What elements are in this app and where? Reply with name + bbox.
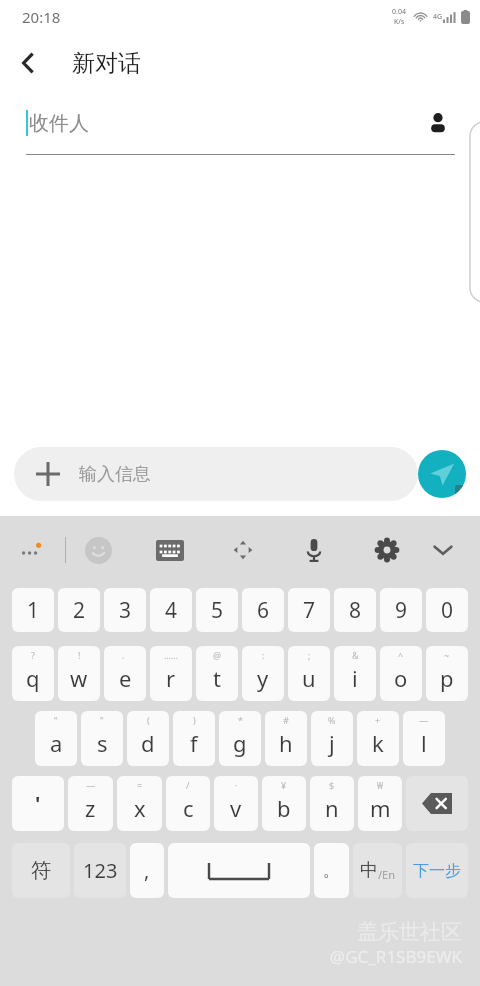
staticText: 1 <box>27 596 40 625</box>
button[interactable]: $ <box>310 776 354 831</box>
staticText: ₩ <box>377 779 384 791</box>
button[interactable]: & <box>334 646 376 701</box>
button[interactable]: Emoji <box>76 528 120 572</box>
button[interactable]: % <box>311 711 353 766</box>
button[interactable]: Backspace <box>406 776 468 831</box>
button[interactable]: / <box>166 776 210 831</box>
staticText: 123 <box>83 857 118 884</box>
staticText: c <box>183 793 194 823</box>
staticText: 4 <box>165 596 178 625</box>
button[interactable]: ; <box>288 646 330 701</box>
button[interactable]: ' <box>12 776 64 831</box>
staticText: ? <box>31 649 35 661</box>
button[interactable]: — <box>68 776 113 831</box>
button[interactable]: 5 <box>196 588 238 632</box>
button[interactable]: Send <box>418 450 466 498</box>
staticText: s <box>97 728 108 758</box>
staticText: & <box>352 649 359 661</box>
staticText: = <box>137 779 143 791</box>
staticText: ) <box>193 714 196 726</box>
button[interactable]: 输入信息 <box>14 447 418 501</box>
button[interactable]: ^ <box>380 646 422 701</box>
staticText: 0.04 <box>392 7 406 17</box>
staticText: 9 <box>395 596 408 625</box>
button[interactable]: “ <box>35 711 77 766</box>
staticText: …… <box>164 649 179 661</box>
staticText: j <box>329 728 335 758</box>
staticText: 4G <box>433 12 443 22</box>
staticText: , <box>144 857 150 884</box>
button[interactable]: More <box>12 530 52 570</box>
button[interactable]: 4 <box>150 588 192 632</box>
staticText: “ <box>54 714 58 726</box>
staticText: h <box>279 728 293 758</box>
button[interactable]: 123 <box>74 843 126 898</box>
staticText: 3 <box>119 596 132 625</box>
button[interactable]: ) <box>173 711 215 766</box>
staticText: 输入信息 <box>79 463 151 486</box>
button[interactable]: Settings <box>365 528 409 572</box>
button[interactable]: ( <box>127 711 169 766</box>
button[interactable]: · <box>214 776 258 831</box>
staticText: @ <box>213 649 222 661</box>
button[interactable]: Space <box>168 843 310 898</box>
staticText: ^ <box>398 649 404 661</box>
button[interactable]: Back <box>0 35 56 91</box>
staticText: l <box>421 728 427 758</box>
button[interactable]: , <box>130 843 164 898</box>
staticText: f <box>190 728 198 758</box>
button[interactable]: ₩ <box>358 776 402 831</box>
button[interactable]: ~ <box>426 646 468 701</box>
staticText: 5 <box>211 596 224 625</box>
button[interactable]: Hide keyboard <box>421 528 465 572</box>
button[interactable]: — <box>403 711 445 766</box>
button[interactable]: " <box>81 711 123 766</box>
staticText: * <box>238 714 243 726</box>
staticText: 符 <box>31 858 51 883</box>
staticText: x <box>134 793 146 823</box>
button[interactable]: 7 <box>288 588 330 632</box>
button[interactable]: 下一步 <box>406 843 468 898</box>
button[interactable]: @ <box>196 646 238 701</box>
button[interactable]: 。 <box>314 843 349 898</box>
staticText: 0 <box>441 596 454 625</box>
button[interactable]: 3 <box>104 588 146 632</box>
staticText: 盖乐世社区 <box>357 919 462 945</box>
button[interactable]: # <box>265 711 307 766</box>
button[interactable]: * <box>219 711 261 766</box>
button[interactable]: 9 <box>380 588 422 632</box>
staticText: 8 <box>349 596 362 625</box>
button[interactable]: Voice input <box>292 528 336 572</box>
button[interactable]: 符 <box>12 843 70 898</box>
staticText: — <box>86 779 96 791</box>
staticText: u <box>302 663 316 693</box>
staticText: d <box>141 728 155 758</box>
staticText: ' <box>35 790 41 817</box>
staticText: + <box>375 714 381 726</box>
button[interactable]: ! <box>58 646 100 701</box>
button[interactable]: Add contact <box>418 103 458 143</box>
button[interactable]: Move cursor <box>221 528 265 572</box>
button[interactable]: Keyboard layout <box>148 528 192 572</box>
staticText: a <box>50 728 63 758</box>
button[interactable]: : <box>242 646 284 701</box>
button[interactable]: 6 <box>242 588 284 632</box>
button[interactable]: …… <box>150 646 192 701</box>
staticText: k <box>372 728 384 758</box>
button[interactable]: 0 <box>426 588 468 632</box>
staticText: i <box>352 663 358 693</box>
button[interactable]: 2 <box>58 588 100 632</box>
button[interactable]: = <box>117 776 162 831</box>
staticText: 6 <box>257 596 270 625</box>
button[interactable]: 、 <box>104 646 146 701</box>
staticText: 20:18 <box>22 7 61 27</box>
button[interactable]: 8 <box>334 588 376 632</box>
staticText: 新对话 <box>72 49 141 78</box>
button[interactable]: 1 <box>12 588 54 632</box>
button[interactable]: ? <box>12 646 54 701</box>
staticText: ~ <box>444 649 450 661</box>
button[interactable]: ¥ <box>262 776 306 831</box>
button[interactable]: + <box>357 711 399 766</box>
staticText: o <box>394 663 408 693</box>
button[interactable]: 中 <box>353 843 402 898</box>
